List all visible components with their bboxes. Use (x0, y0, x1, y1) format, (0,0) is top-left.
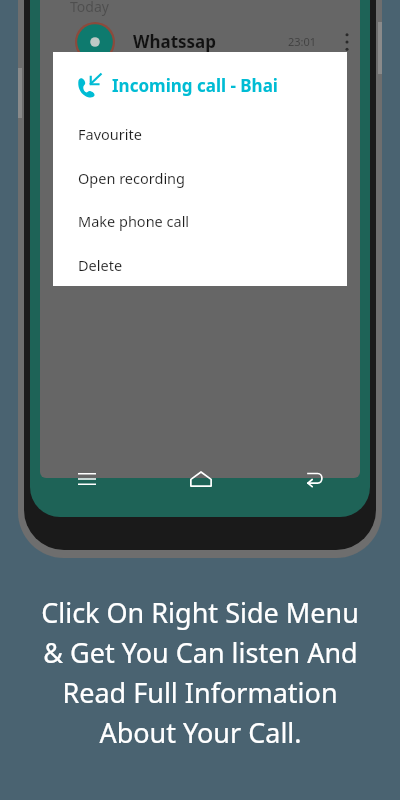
staticText: Open recording (78, 168, 185, 188)
button[interactable]: More options (340, 29, 354, 55)
button[interactable]: Open recording (53, 156, 347, 199)
staticText: 23:01 (288, 34, 317, 49)
staticText: Favourite (78, 124, 142, 144)
button[interactable]: Make phone call (53, 199, 347, 242)
staticText: Read Full Information (62, 674, 338, 711)
staticText: About Your Call. (99, 714, 302, 751)
staticText: Today (70, 0, 109, 16)
button[interactable]: Favourite (53, 112, 347, 155)
staticText: Make phone call (78, 211, 190, 231)
button[interactable]: Home (144, 459, 257, 499)
staticText: Whatssap (133, 30, 217, 53)
button[interactable]: Back (257, 459, 370, 499)
staticText: Incoming call - Bhai (112, 74, 278, 97)
staticText: Delete (78, 255, 123, 275)
button[interactable]: Recent apps (30, 459, 144, 499)
button[interactable]: Incoming call - Bhai (53, 66, 347, 104)
button[interactable]: Whatssap (40, 20, 360, 66)
button[interactable]: Delete (53, 243, 347, 286)
staticText: Click On Right Side Menu (41, 594, 359, 631)
staticText: & Get You Can listen And (43, 634, 358, 671)
